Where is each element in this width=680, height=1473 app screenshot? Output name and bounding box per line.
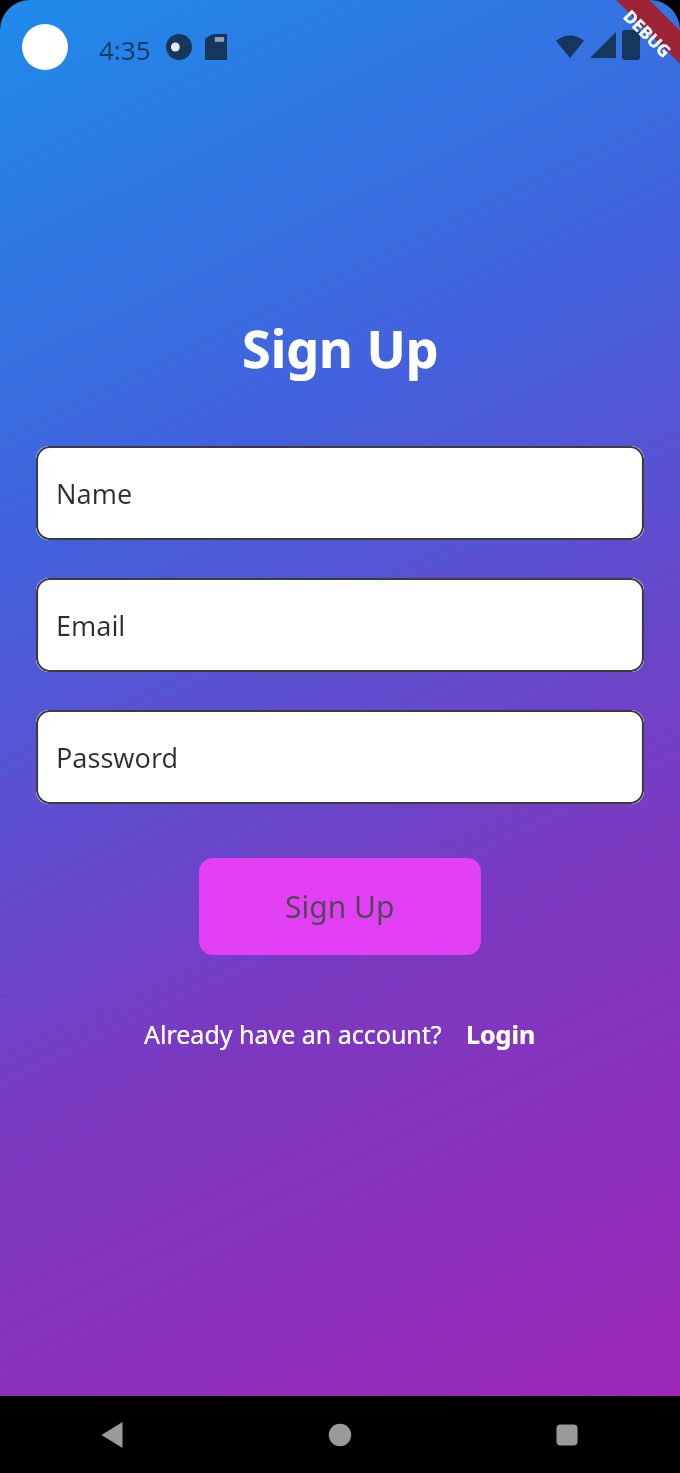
button[interactable]: Name xyxy=(36,446,644,540)
button[interactable]: Password xyxy=(36,710,644,804)
staticText: 4:35 xyxy=(99,32,151,67)
button[interactable]: Email xyxy=(36,578,644,672)
button[interactable]: Back xyxy=(0,1396,226,1473)
staticText: Name xyxy=(56,475,133,512)
staticText: Login xyxy=(466,1017,536,1051)
staticText: Already have an account? xyxy=(144,1017,442,1051)
button[interactable]: Recents xyxy=(453,1396,680,1473)
button[interactable]: Login xyxy=(466,1017,536,1051)
button[interactable]: Sign Up xyxy=(199,858,481,955)
staticText: Sign Up xyxy=(285,886,395,927)
staticText: Password xyxy=(56,739,179,776)
button[interactable]: Home xyxy=(226,1396,453,1473)
staticText: Sign Up xyxy=(242,312,439,383)
staticText: DEBUG xyxy=(618,4,676,62)
staticText: Email xyxy=(56,607,126,644)
